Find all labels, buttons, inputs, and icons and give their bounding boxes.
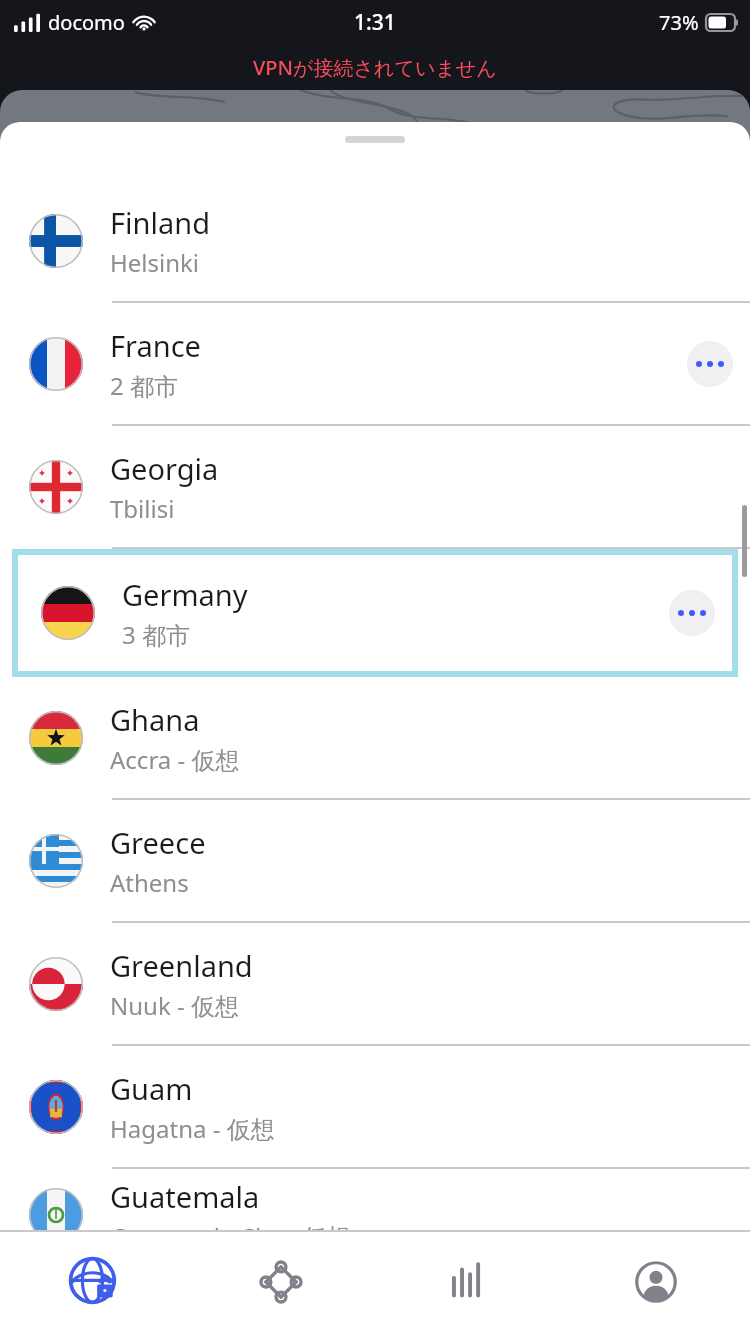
button[interactable]: More options for France bbox=[687, 341, 733, 387]
staticText: Greece bbox=[110, 823, 206, 862]
button[interactable]: Guatemala bbox=[0, 1169, 750, 1261]
button[interactable]: Greenland bbox=[0, 923, 750, 1046]
staticText: Ghana bbox=[110, 700, 200, 739]
staticText: docomo bbox=[48, 9, 125, 36]
staticText: VPNが接続されていません bbox=[253, 54, 497, 81]
staticText: Tbilisi bbox=[110, 492, 175, 525]
staticText: Accra - 仮想 bbox=[110, 743, 240, 776]
staticText: Hagatna - 仮想 bbox=[110, 1112, 275, 1145]
staticText: Finland bbox=[110, 203, 210, 242]
button[interactable]: Profile bbox=[562, 1230, 750, 1334]
staticText: 2 都市 bbox=[110, 369, 178, 402]
staticText: Greenland bbox=[110, 946, 253, 985]
staticText: France bbox=[110, 326, 201, 365]
staticText: Germany bbox=[122, 575, 248, 614]
staticText: Guatemala bbox=[110, 1177, 260, 1216]
button[interactable]: Germany bbox=[12, 549, 738, 677]
button[interactable]: More options for Germany bbox=[669, 590, 715, 636]
staticText: 73% bbox=[659, 9, 699, 36]
button[interactable]: Mesh network bbox=[187, 1230, 374, 1334]
button[interactable]: Greece bbox=[0, 800, 750, 923]
staticText: 1:31 bbox=[354, 8, 396, 37]
button[interactable]: Georgia bbox=[0, 426, 750, 549]
staticText: Guam bbox=[110, 1069, 193, 1108]
staticText: Athens bbox=[110, 866, 189, 899]
button[interactable]: VPN bbox=[0, 1230, 187, 1334]
button[interactable]: Statistics bbox=[374, 1230, 562, 1334]
button[interactable]: Ghana bbox=[0, 677, 750, 800]
staticText: Georgia bbox=[110, 449, 219, 488]
button[interactable]: France bbox=[0, 303, 750, 426]
button[interactable]: Finland bbox=[0, 180, 750, 303]
staticText: Guatemala City - 仮想 bbox=[110, 1220, 351, 1253]
staticText: Helsinki bbox=[110, 246, 200, 279]
staticText: Nuuk - 仮想 bbox=[110, 989, 239, 1022]
staticText: 3 都市 bbox=[122, 618, 190, 651]
button[interactable]: Guam bbox=[0, 1046, 750, 1169]
